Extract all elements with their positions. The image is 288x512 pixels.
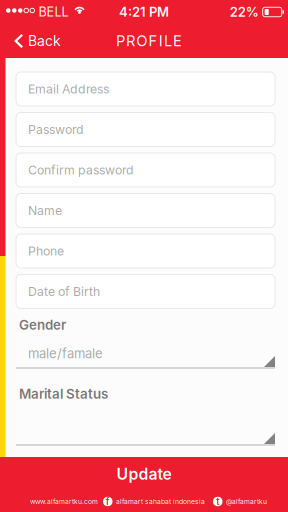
staticText: male/famale: [28, 346, 103, 361]
staticText: P: [116, 32, 125, 50]
staticText: Gender: [19, 317, 66, 333]
staticText: Email Address: [28, 82, 109, 96]
button[interactable]: t: [213, 491, 288, 512]
button[interactable]: Back: [0, 24, 69, 58]
staticText: t: [216, 496, 219, 507]
staticText: R: [126, 32, 135, 50]
staticText: O: [136, 32, 147, 50]
button[interactable]: Update: [0, 457, 288, 491]
staticText: Update: [116, 464, 171, 483]
staticText: f: [106, 496, 110, 507]
button[interactable]: Date of Birth: [16, 274, 275, 308]
staticText: L: [164, 32, 172, 50]
button[interactable]: Confirm password: [16, 153, 275, 187]
button[interactable]: Name: [16, 193, 275, 227]
button[interactable]: [16, 400, 275, 445]
staticText: 22%: [230, 4, 259, 20]
staticText: Date of Birth: [28, 284, 100, 299]
staticText: Name: [28, 203, 62, 218]
button[interactable]: male/famale: [16, 331, 275, 368]
staticText: www.alfamartku.com: [30, 497, 98, 506]
staticText: E: [173, 32, 182, 50]
button[interactable]: Phone: [16, 234, 275, 268]
staticText: Back: [28, 32, 61, 49]
staticText: Password: [28, 122, 84, 137]
staticText: alfamart sahabat indonesia: [116, 497, 205, 506]
staticText: F: [148, 32, 157, 50]
staticText: Phone: [28, 244, 64, 258]
staticText: 4:21 PM: [119, 4, 169, 20]
staticText: Marital Status: [19, 386, 108, 402]
button[interactable]: www.alfamartku.com: [0, 491, 96, 512]
button[interactable]: f: [96, 491, 205, 512]
staticText: @alfamartku: [226, 497, 267, 506]
button[interactable]: Password: [16, 112, 275, 146]
button[interactable]: Email Address: [16, 72, 275, 106]
staticText: I: [159, 32, 163, 50]
staticText: Confirm password: [28, 163, 134, 177]
staticText: BELL: [38, 4, 68, 20]
